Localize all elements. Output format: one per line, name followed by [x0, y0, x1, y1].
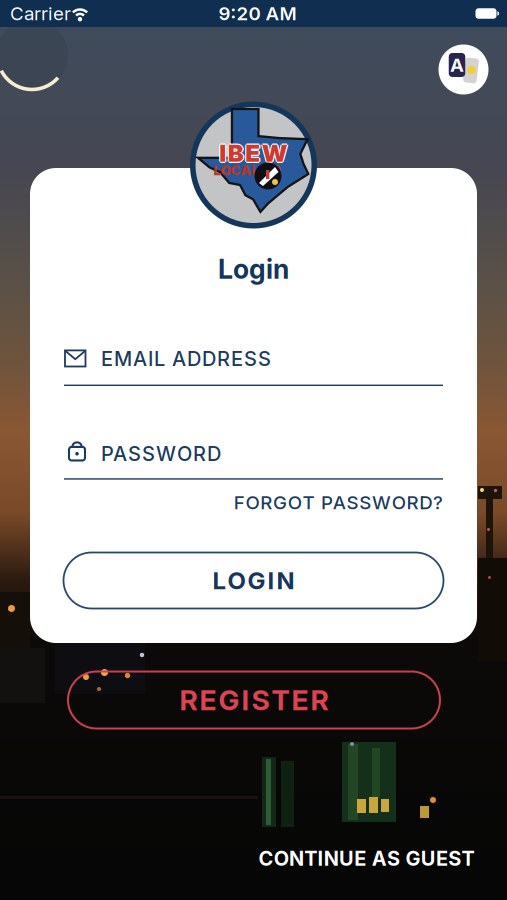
- staticText: LOGIN: [212, 566, 294, 595]
- staticText: PASSWORD: [101, 442, 221, 465]
- staticText: IBEW: [219, 140, 288, 168]
- button[interactable]: FORGOT PASSWORD?: [143, 491, 443, 513]
- button[interactable]: EMAIL ADDRESS: [64, 340, 443, 387]
- staticText: IBEW: [219, 138, 288, 166]
- staticText: REGISTER: [179, 683, 328, 716]
- button[interactable]: LOGIN: [63, 552, 443, 608]
- staticText: A: [450, 54, 464, 76]
- staticText: FORGOT PASSWORD?: [234, 491, 443, 513]
- staticText: Login: [218, 253, 289, 285]
- staticText: 9:20 AM: [218, 2, 296, 24]
- staticText: Carrier: [10, 2, 71, 24]
- staticText: EMAIL ADDRESS: [101, 347, 271, 371]
- button[interactable]: Change language: [438, 44, 488, 94]
- staticText: IBEW: [220, 139, 289, 167]
- staticText: LOCAL 60: [213, 163, 280, 178]
- staticText: CONTINUE AS GUEST: [258, 847, 474, 870]
- staticText: IBEW: [218, 139, 287, 167]
- button[interactable]: REGISTER: [68, 671, 440, 728]
- staticText: IBEW: [219, 139, 288, 167]
- button[interactable]: PASSWORD: [64, 434, 443, 480]
- button[interactable]: CONTINUE AS GUEST: [174, 847, 474, 870]
